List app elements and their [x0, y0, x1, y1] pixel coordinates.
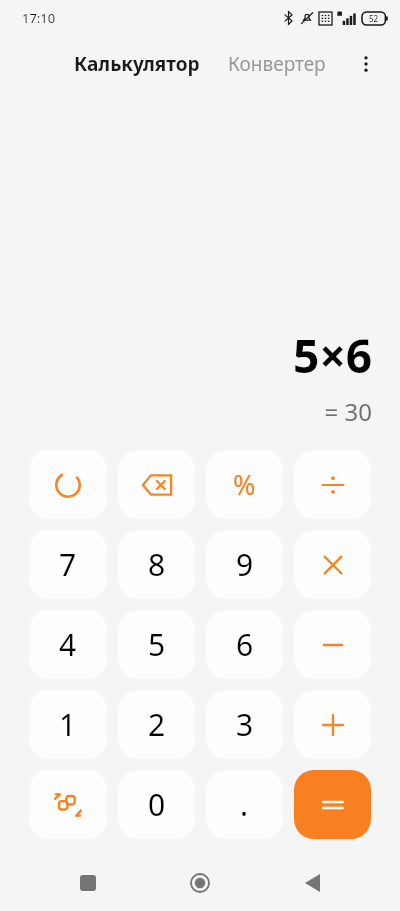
button[interactable]: 0: [118, 770, 195, 839]
staticText: Калькулятор: [74, 51, 200, 77]
staticText: 9: [236, 544, 254, 585]
staticText: .: [240, 784, 249, 825]
button[interactable]: 1: [29, 690, 107, 759]
button[interactable]: Convert: [29, 770, 107, 839]
staticText: 4: [59, 624, 77, 665]
button[interactable]: 8: [118, 530, 195, 599]
button[interactable]: %: [206, 450, 283, 519]
staticText: 17:10: [22, 9, 56, 27]
staticText: 52: [369, 13, 379, 24]
staticText: 7: [59, 544, 77, 585]
staticText: = 30: [324, 395, 372, 428]
button[interactable]: Multiply: [294, 530, 371, 599]
staticText: 5: [148, 624, 166, 665]
staticText: 2: [148, 704, 166, 745]
button[interactable]: Divide: [294, 450, 371, 519]
button[interactable]: [29, 450, 107, 519]
staticText: Конвертер: [228, 51, 326, 77]
button[interactable]: Конвертер: [222, 45, 332, 83]
button[interactable]: Back: [288, 859, 336, 907]
button[interactable]: Backspace: [118, 450, 195, 519]
staticText: 8: [148, 544, 166, 585]
button[interactable]: 3: [206, 690, 283, 759]
button[interactable]: 7: [29, 530, 107, 599]
button[interactable]: 9: [206, 530, 283, 599]
staticText: 3: [236, 704, 254, 745]
button[interactable]: Plus: [294, 690, 371, 759]
button[interactable]: 5: [118, 610, 195, 679]
button[interactable]: 4: [29, 610, 107, 679]
staticText: 5×6: [293, 324, 372, 387]
staticText: 1: [59, 704, 77, 745]
button[interactable]: Калькулятор: [68, 45, 206, 83]
button[interactable]: Equals: [294, 770, 371, 839]
staticText: 0: [148, 784, 166, 825]
button[interactable]: More options: [344, 42, 388, 86]
button[interactable]: 6: [206, 610, 283, 679]
staticText: 6: [236, 624, 254, 665]
button[interactable]: Home: [176, 859, 224, 907]
button[interactable]: Recents: [64, 859, 112, 907]
button[interactable]: Minus: [294, 610, 371, 679]
button[interactable]: 2: [118, 690, 195, 759]
button[interactable]: .: [206, 770, 283, 839]
staticText: %: [233, 466, 256, 503]
